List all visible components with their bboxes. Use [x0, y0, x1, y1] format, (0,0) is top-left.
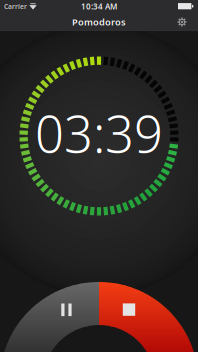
staticText: 10:34 AM — [81, 1, 117, 12]
button[interactable]: Stop — [0, 0, 198, 352]
staticText: Pomodoros — [72, 16, 126, 28]
staticText: 03:39 — [35, 99, 163, 167]
button[interactable]: Settings — [166, 13, 198, 31]
button[interactable]: Pause — [0, 0, 198, 352]
staticText: Carrier — [4, 2, 27, 11]
